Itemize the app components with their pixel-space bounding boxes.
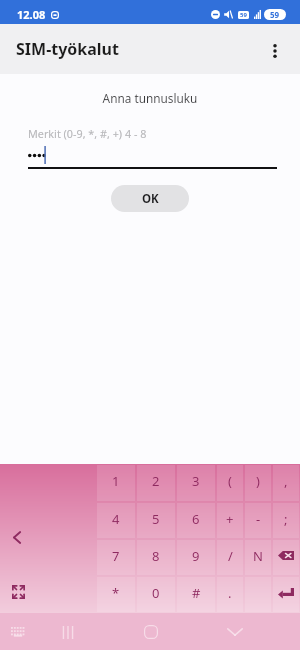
staticText: Anna tunnusluku (0, 90, 300, 106)
button[interactable]: 0 (137, 577, 175, 612)
button[interactable]: 4 (97, 503, 135, 538)
button[interactable]: 8 (137, 540, 175, 575)
button[interactable]: ( (217, 465, 243, 501)
button[interactable]: 3 (177, 465, 215, 501)
button[interactable]: * (97, 577, 135, 612)
staticText: / (228, 547, 233, 565)
button[interactable]: Recent apps (54, 618, 82, 646)
button[interactable]: 6 (177, 503, 215, 538)
button[interactable]: More options (256, 30, 294, 68)
staticText: 4 (112, 510, 120, 528)
staticText: 2 (152, 472, 160, 490)
button[interactable]: Home (137, 618, 165, 646)
button[interactable]: 5 (137, 503, 175, 538)
staticText: 8 (152, 547, 160, 565)
button[interactable]: # (177, 577, 215, 612)
staticText: 7 (112, 547, 120, 565)
staticText: 6 (192, 510, 200, 528)
staticText: 12.08 (17, 7, 46, 22)
button[interactable]: 7 (97, 540, 135, 575)
button[interactable]: + (217, 503, 243, 538)
staticText: SIM-työkalut (16, 38, 119, 60)
staticText: 59 (240, 11, 247, 19)
staticText: + (226, 510, 234, 528)
button[interactable]: , (273, 465, 299, 501)
staticText: 1 (112, 472, 120, 490)
button[interactable]: Resize keyboard (5, 579, 31, 605)
button[interactable] (273, 577, 299, 612)
staticText: 0 (152, 584, 160, 602)
staticText: - (256, 510, 261, 528)
staticText: . (228, 584, 232, 602)
staticText: 9 (192, 547, 200, 565)
staticText: ( (228, 472, 232, 490)
staticText: # (192, 584, 201, 602)
button[interactable]: . (217, 577, 243, 612)
button[interactable]: / (217, 540, 243, 575)
button[interactable]: Back (221, 618, 249, 646)
staticText: 3 (192, 472, 200, 490)
staticText: Merkit (0-9, *, #, +) 4 - 8 (28, 126, 147, 141)
staticText: N (253, 547, 263, 565)
button[interactable]: ; (273, 503, 299, 538)
button[interactable]: N (245, 540, 271, 575)
button[interactable]: 9 (177, 540, 215, 575)
staticText: 59 (270, 9, 280, 20)
staticText: 5 (152, 510, 160, 528)
button[interactable] (245, 577, 271, 612)
staticText: * (112, 584, 120, 602)
staticText: OK (142, 191, 159, 207)
button[interactable] (273, 540, 299, 575)
button[interactable]: 1 (97, 465, 135, 501)
button[interactable]: - (245, 503, 271, 538)
button[interactable]: Previous (3, 523, 31, 551)
button[interactable]: 2 (137, 465, 175, 501)
button[interactable]: Hide keyboard (4, 618, 32, 646)
staticText: ) (256, 472, 260, 490)
staticText: ; (284, 510, 288, 528)
button[interactable]: ) (245, 465, 271, 501)
button[interactable]: OK (111, 185, 189, 212)
staticText: , (284, 472, 288, 490)
